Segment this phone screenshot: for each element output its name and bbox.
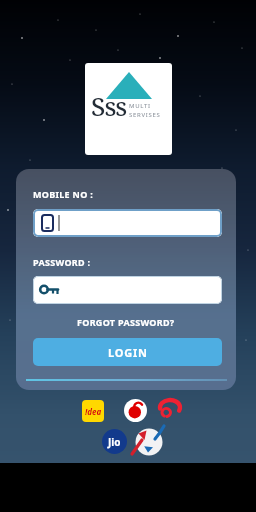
staticText: SERVISES bbox=[129, 111, 161, 119]
staticText: FORGOT PASSWORD? bbox=[77, 316, 175, 328]
button[interactable]: !dea bbox=[82, 400, 104, 422]
button[interactable] bbox=[124, 399, 147, 422]
staticText: Jio bbox=[108, 435, 121, 449]
staticText: !dea bbox=[85, 406, 102, 417]
staticText: Sss bbox=[91, 88, 127, 123]
button[interactable] bbox=[33, 276, 222, 304]
button[interactable] bbox=[156, 396, 184, 424]
staticText: PASSWORD : bbox=[33, 256, 91, 268]
button[interactable] bbox=[33, 209, 222, 237]
button[interactable] bbox=[130, 423, 168, 461]
staticText: LOGIN bbox=[108, 345, 148, 360]
staticText: MOBILE NO : bbox=[33, 188, 94, 200]
staticText: MULTI bbox=[129, 102, 151, 110]
button[interactable]: FORGOT PASSWORD? bbox=[16, 316, 236, 328]
button[interactable]: LOGIN bbox=[33, 338, 222, 366]
button[interactable]: Jio bbox=[102, 429, 127, 454]
